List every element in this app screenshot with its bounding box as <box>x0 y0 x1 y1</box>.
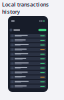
button[interactable] <box>10 71 46 74</box>
button[interactable] <box>10 57 46 61</box>
button[interactable] <box>10 66 46 70</box>
button[interactable] <box>10 43 46 47</box>
button[interactable]: New transaction <box>38 29 46 31</box>
button[interactable] <box>10 48 46 51</box>
button[interactable] <box>10 85 46 88</box>
staticText: Local transactions <box>2 1 49 8</box>
button[interactable] <box>10 75 46 79</box>
button[interactable]: Account <box>10 29 20 31</box>
button[interactable] <box>10 62 46 65</box>
button[interactable] <box>10 34 46 38</box>
staticText: history <box>2 8 20 15</box>
button[interactable] <box>10 39 46 42</box>
button[interactable] <box>10 52 46 56</box>
button[interactable] <box>10 80 46 84</box>
